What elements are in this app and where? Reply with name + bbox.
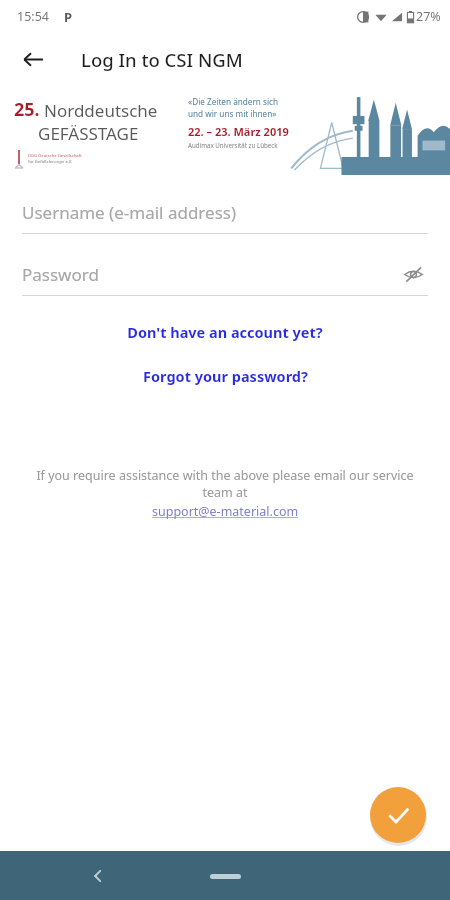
staticText: P <box>64 8 73 26</box>
staticText: Don't have an account yet? <box>127 322 323 342</box>
staticText: und wir uns mit ihnen» <box>188 108 277 119</box>
button[interactable]: Back <box>80 858 116 894</box>
staticText: 22. – 23. März 2019 <box>188 124 289 139</box>
button[interactable]: support@e-material.com <box>148 502 303 521</box>
button[interactable]: Back <box>14 40 52 78</box>
staticText: Password <box>22 263 99 286</box>
staticText: If you require assistance with the above… <box>20 467 430 501</box>
button[interactable]: Username (e-mail address) <box>22 197 428 234</box>
staticText: «Die Zeiten ändern sich <box>188 96 279 107</box>
button[interactable]: Show password <box>398 259 428 289</box>
button[interactable]: Home <box>202 866 248 886</box>
button[interactable]: Confirm <box>370 787 426 843</box>
button[interactable]: Don't have an account yet? <box>119 319 331 345</box>
staticText: Audimax Universität zu Lübeck <box>188 141 278 149</box>
staticText: Forgot your password? <box>143 366 308 386</box>
staticText: 15:54 <box>17 8 49 25</box>
staticText: 27% <box>416 8 441 25</box>
button[interactable]: Forgot your password? <box>135 363 316 389</box>
button[interactable]: Password <box>22 259 428 296</box>
staticText: Username (e-mail address) <box>22 201 237 224</box>
staticText: 25. <box>14 97 40 122</box>
staticText: Norddeutsche <box>44 99 158 122</box>
staticText: support@e-material.com <box>152 503 299 520</box>
staticText: für Gefäßchirurgie e.V. <box>28 159 73 165</box>
staticText: GEFÄSSTAGE <box>38 122 139 145</box>
staticText: DGG Deutsche Gesellschaft <box>28 153 82 159</box>
staticText: Log In to CSI NGM <box>81 47 243 72</box>
